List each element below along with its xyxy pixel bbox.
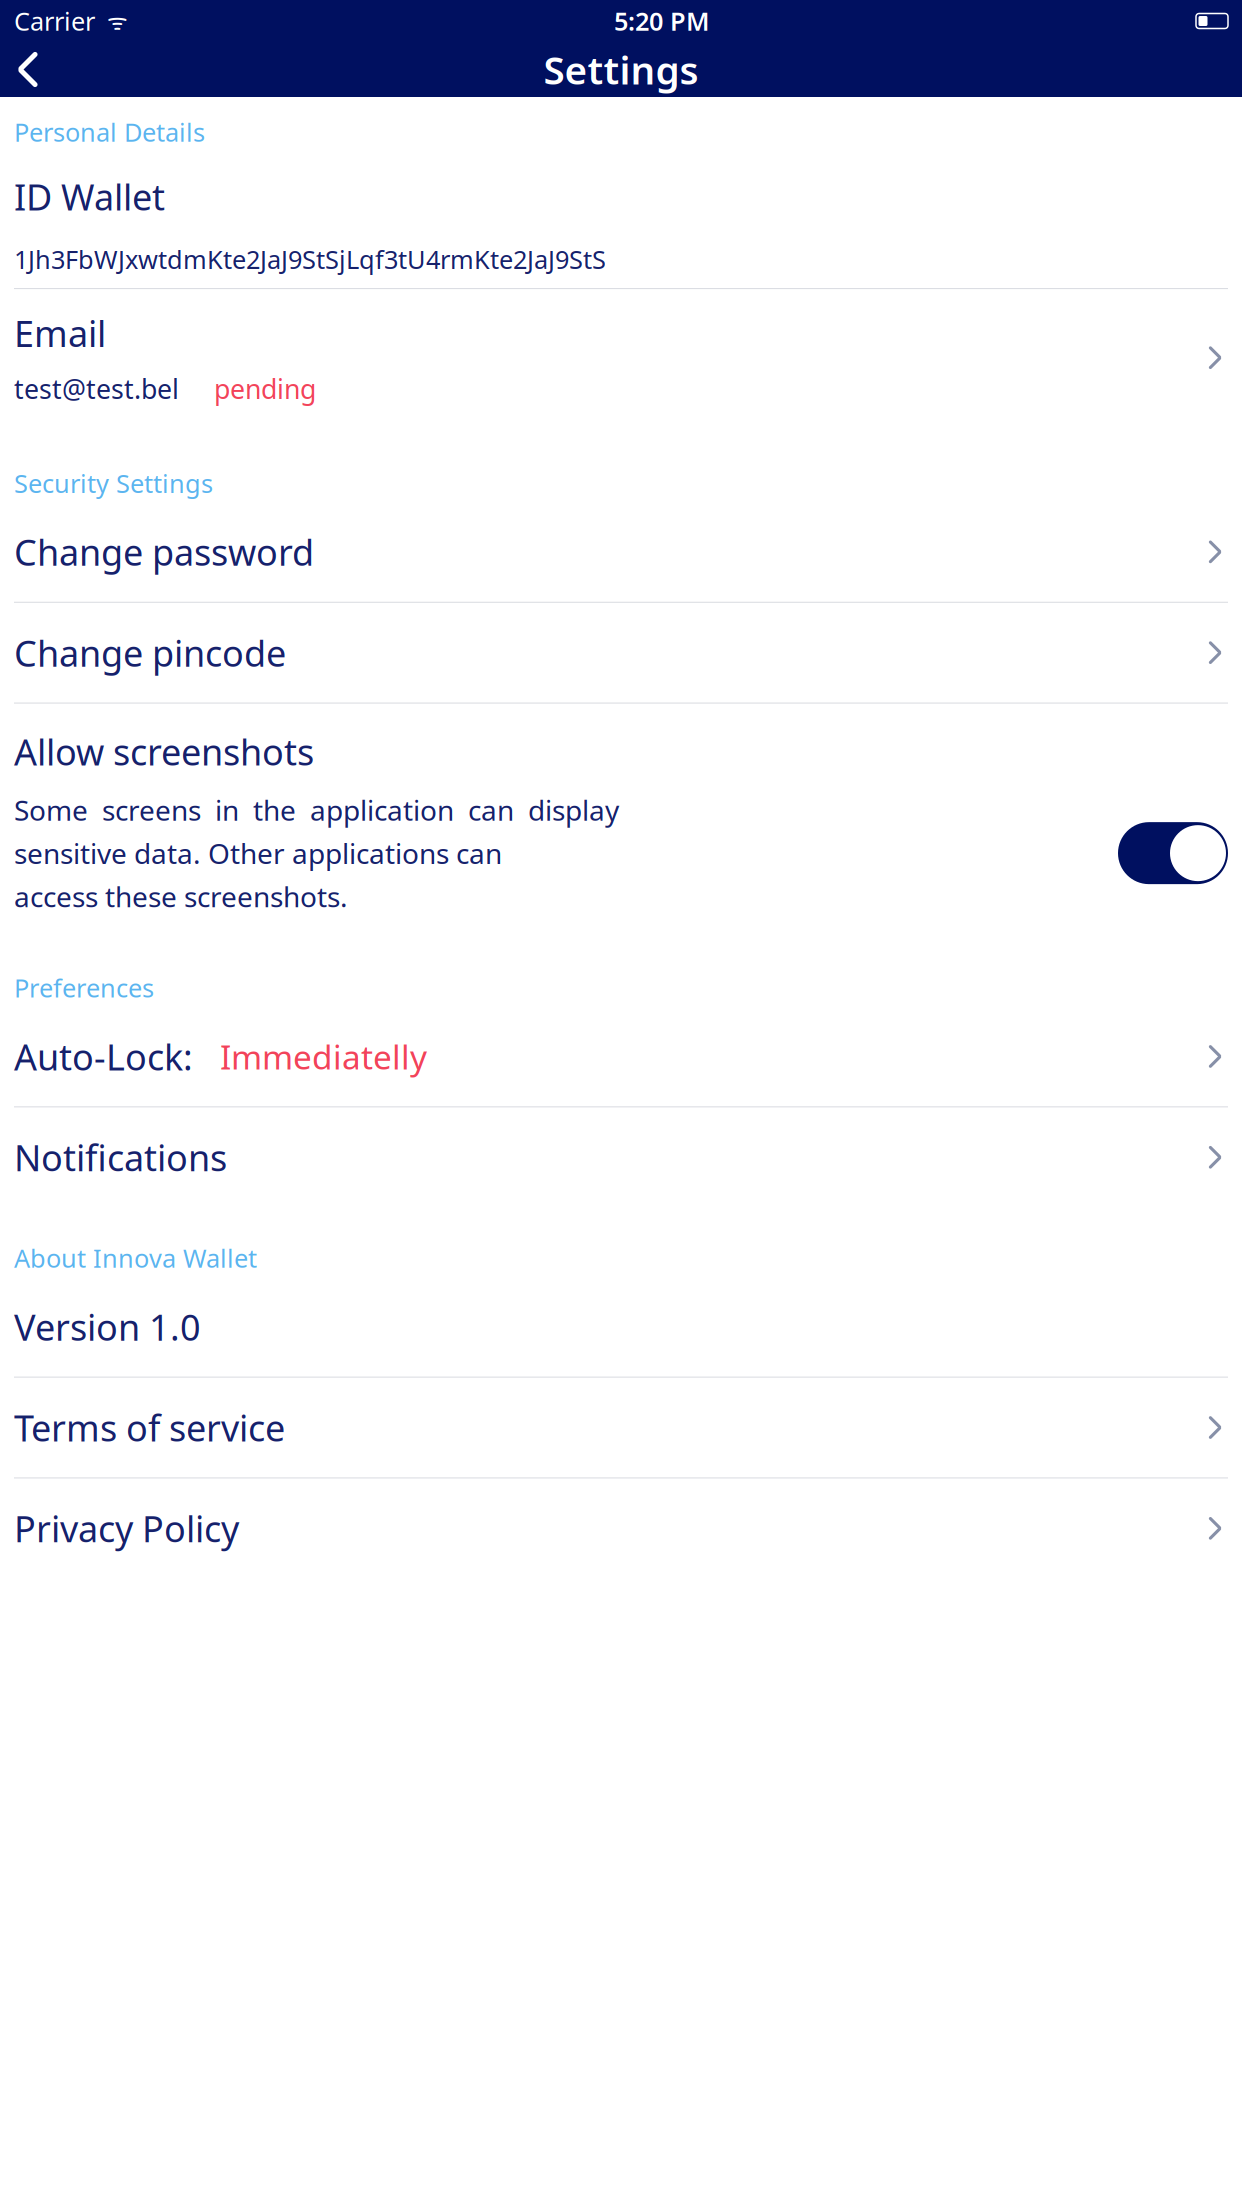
staticText: Personal Details bbox=[14, 115, 205, 149]
staticText: Some screens in the application can disp… bbox=[14, 791, 619, 829]
button[interactable]: Notifications bbox=[14, 1107, 1228, 1191]
staticText: sensitive data. Other applications can bbox=[14, 835, 502, 872]
staticText: Privacy Policy bbox=[14, 1504, 239, 1552]
staticText: access these screenshots. bbox=[14, 878, 348, 915]
staticText: Preferences bbox=[14, 971, 154, 1004]
button[interactable]: Allow screenshots bbox=[1118, 822, 1228, 884]
staticText: Version 1.0 bbox=[14, 1303, 201, 1351]
button[interactable]: Back bbox=[0, 42, 56, 96]
button[interactable]: Change pincode bbox=[14, 603, 1228, 704]
staticText: Allow screenshots bbox=[14, 728, 314, 775]
staticText: Email bbox=[14, 309, 106, 357]
staticText: Immediatelly bbox=[193, 1034, 427, 1079]
staticText: test@test.bel bbox=[14, 371, 179, 406]
staticText: About Innova Wallet bbox=[14, 1241, 257, 1275]
staticText: Carrier bbox=[14, 4, 95, 38]
staticText: 5:20 PM bbox=[614, 4, 710, 38]
staticText: Change pincode bbox=[14, 629, 286, 677]
staticText: Security Settings bbox=[14, 466, 213, 500]
staticText: ᯤ bbox=[95, 6, 128, 36]
staticText: 1Jh3FbWJxwtdmKte2JaJ9StSjLqf3tU4rmKte2Ja… bbox=[14, 242, 606, 276]
staticText: Auto-Lock: bbox=[14, 1033, 193, 1080]
button[interactable]: Email bbox=[14, 289, 1228, 416]
button[interactable]: Privacy Policy bbox=[14, 1478, 1228, 1578]
staticText: ID Wallet bbox=[14, 173, 165, 220]
button[interactable]: Terms of service bbox=[14, 1378, 1228, 1478]
staticText: Notifications bbox=[14, 1133, 227, 1181]
staticText: Terms of service bbox=[14, 1404, 285, 1451]
button[interactable]: Change password bbox=[14, 528, 1228, 603]
staticText: pending bbox=[179, 371, 316, 406]
staticText: Settings bbox=[543, 44, 698, 95]
button[interactable]: Auto-Lock: bbox=[14, 1033, 1228, 1107]
staticText: Change password bbox=[14, 528, 314, 576]
